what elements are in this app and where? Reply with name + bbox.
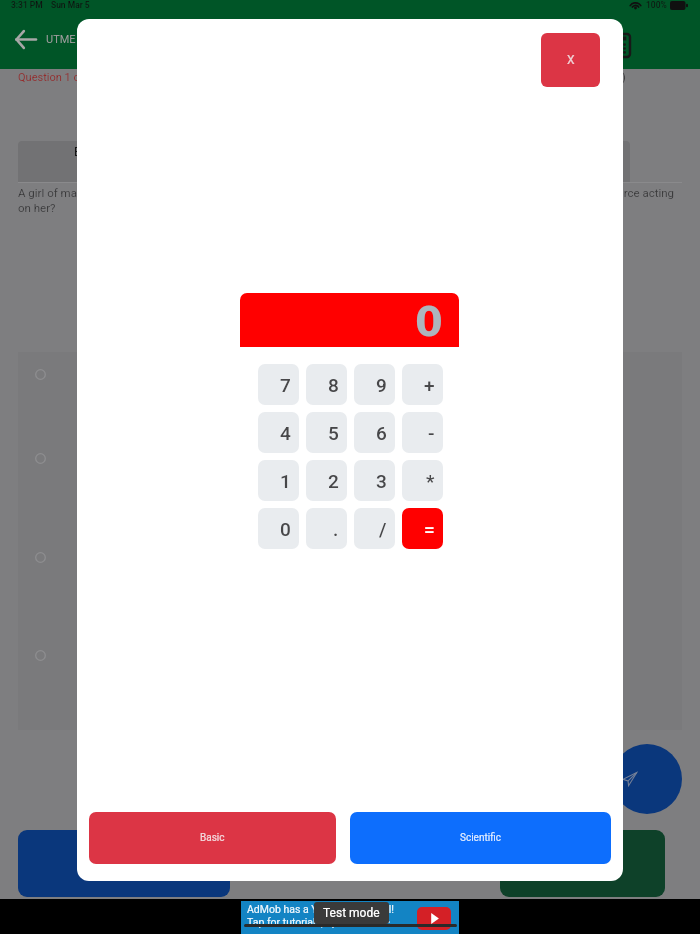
staticText: + — [424, 374, 435, 396]
staticText: 9 — [376, 374, 387, 396]
button[interactable] — [18, 633, 682, 677]
button[interactable]: - — [402, 412, 443, 453]
button[interactable]: = — [402, 508, 443, 549]
staticText: B — [74, 145, 82, 159]
staticText: 0 — [415, 299, 443, 346]
button[interactable]: 1 — [258, 460, 299, 501]
button[interactable] — [18, 352, 682, 396]
staticText: AdMob has a YouTube channel! — [247, 903, 395, 915]
staticText: Basic — [200, 832, 225, 844]
staticText: 7 — [280, 374, 291, 396]
button[interactable]: 0 — [258, 508, 299, 549]
staticText: X — [567, 53, 575, 67]
staticText: . — [333, 518, 339, 540]
staticText: Tap for tutorials, tips and more — [247, 916, 390, 928]
button[interactable]: * — [402, 460, 443, 501]
staticText: - — [428, 422, 435, 444]
button[interactable] — [18, 535, 682, 579]
button[interactable]: 6 — [354, 412, 395, 453]
button[interactable]: 5 — [306, 412, 347, 453]
button[interactable]: 4 — [258, 412, 299, 453]
staticText: 8 — [328, 374, 339, 396]
button[interactable]: Scientific — [350, 812, 611, 864]
staticText: 2 — [328, 470, 339, 492]
staticText: Scientific — [460, 832, 501, 844]
button[interactable]: / — [354, 508, 395, 549]
staticText: 3:31 PM — [11, 0, 43, 10]
button[interactable]: 7 — [258, 364, 299, 405]
button[interactable] — [500, 830, 665, 897]
staticText: 1 — [280, 470, 291, 492]
staticText: A girl of mass 50 kg stands on the floor… — [18, 186, 675, 215]
button[interactable]: + — [402, 364, 443, 405]
button[interactable]: Basic — [89, 812, 336, 864]
button[interactable] — [18, 436, 682, 480]
staticText: 3 — [376, 470, 387, 492]
staticText: Question 1 of 40 — [18, 71, 99, 84]
button[interactable]: . — [306, 508, 347, 549]
staticText: UTME — Physics 2019 — [46, 33, 156, 46]
button[interactable]: 3 — [354, 460, 395, 501]
staticText: Sun Mar 5 — [51, 0, 90, 10]
button[interactable]: Close calculator — [541, 33, 600, 87]
staticText: Test mode — [323, 906, 380, 920]
staticText: 4 — [280, 422, 291, 444]
staticText: 6 — [376, 422, 387, 444]
staticText: 5 — [328, 422, 339, 444]
button[interactable] — [18, 830, 230, 897]
staticText: 0 — [280, 518, 291, 540]
button[interactable]: Submit — [612, 744, 682, 814]
staticText: (Time left: 00:00) — [542, 71, 626, 84]
staticText: / — [379, 518, 387, 540]
button[interactable]: 8 — [306, 364, 347, 405]
button[interactable]: Back — [6, 20, 44, 58]
staticText: = — [424, 518, 435, 540]
staticText: * — [426, 470, 435, 492]
staticText: 100% — [646, 0, 667, 10]
button[interactable]: 9 — [354, 364, 395, 405]
button[interactable]: 2 — [306, 460, 347, 501]
button[interactable]: Calculator — [602, 26, 640, 64]
